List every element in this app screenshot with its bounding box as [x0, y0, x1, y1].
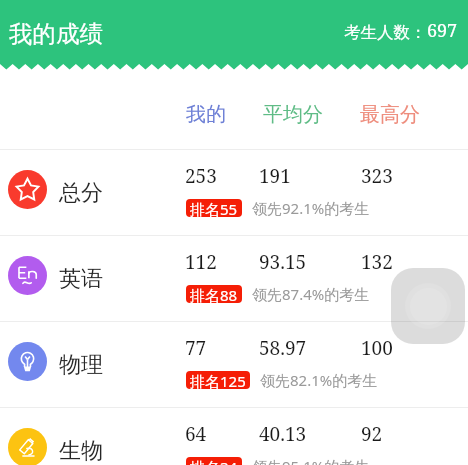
staticText: 生物 — [59, 437, 103, 465]
staticText: 平均分 — [263, 102, 323, 127]
staticText: 64 — [185, 421, 207, 447]
staticText: 93.15 — [259, 249, 307, 275]
staticText: 92 — [361, 421, 383, 447]
button[interactable]: 最高分 — [352, 96, 428, 132]
staticText: 领先95.1%的考生 — [252, 456, 370, 465]
button[interactable]: 英语 — [0, 236, 468, 322]
staticText: 77 — [185, 335, 207, 361]
staticText: 253 — [185, 163, 217, 189]
staticText: 排名125 — [190, 371, 246, 389]
staticText: 最高分 — [360, 102, 420, 127]
staticText: 排名34 — [190, 457, 238, 465]
staticText: 697 — [427, 18, 458, 43]
staticText: 132 — [361, 249, 393, 275]
staticText: 191 — [259, 163, 291, 189]
button[interactable]: 生物 — [0, 408, 468, 465]
staticText: 排名55 — [190, 199, 238, 217]
staticText: 我的 — [186, 102, 226, 127]
staticText: 323 — [361, 163, 393, 189]
staticText: 领先87.4%的考生 — [252, 284, 370, 304]
staticText: 领先92.1%的考生 — [252, 198, 370, 218]
staticText: 英语 — [59, 265, 103, 293]
button[interactable]: 物理 — [0, 322, 468, 408]
staticText: 总分 — [59, 179, 103, 207]
staticText: 58.97 — [259, 335, 307, 361]
button[interactable]: 总分 — [0, 150, 468, 236]
button[interactable]: 平均分 — [255, 96, 331, 132]
staticText: 112 — [185, 249, 217, 275]
staticText: 排名88 — [190, 285, 238, 303]
staticText: 领先82.1%的考生 — [260, 370, 378, 390]
staticText: 物理 — [59, 351, 103, 379]
button[interactable]: Assistive touch — [391, 268, 465, 344]
button[interactable]: 我的 — [176, 96, 236, 132]
staticText: 40.13 — [259, 421, 307, 447]
staticText: 100 — [361, 335, 393, 361]
staticText: 我的成绩 — [9, 19, 103, 49]
staticText: 考生人数： — [344, 22, 427, 43]
